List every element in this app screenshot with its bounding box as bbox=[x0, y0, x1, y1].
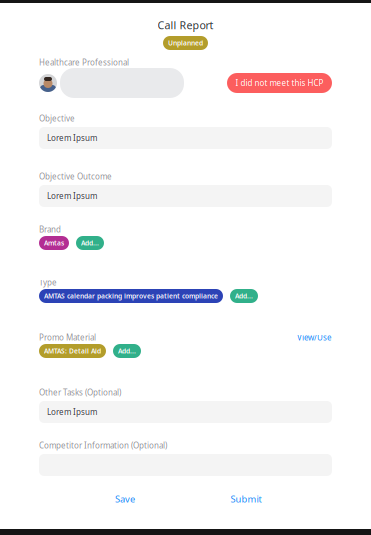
button[interactable]: AMTAS: Detail Aid bbox=[39, 344, 106, 358]
button[interactable]: View/Use bbox=[297, 332, 332, 343]
staticText: AMTAS: Detail Aid bbox=[44, 347, 101, 355]
staticText: AMTAS calendar packing improves patient … bbox=[44, 292, 218, 300]
staticText: Objective Outcome bbox=[39, 171, 112, 182]
staticText: Add... bbox=[235, 292, 253, 300]
button[interactable]: Add... bbox=[230, 289, 258, 303]
staticText: Healthcare Professional bbox=[39, 57, 129, 68]
staticText: Lorem Ipsum bbox=[47, 133, 97, 143]
staticText: View/Use bbox=[297, 332, 332, 343]
staticText: Submit bbox=[230, 493, 261, 505]
staticText: Add... bbox=[81, 239, 99, 247]
staticText: Lorem Ipsum bbox=[47, 407, 97, 417]
staticText: Other Tasks (Optional) bbox=[39, 387, 121, 398]
staticText: Add... bbox=[118, 347, 136, 355]
button[interactable]: AMTAS calendar packing improves patient … bbox=[39, 289, 223, 303]
button[interactable]: Add... bbox=[113, 344, 141, 358]
button[interactable]: Save bbox=[90, 491, 160, 507]
staticText: Amtas bbox=[44, 239, 64, 247]
staticText: Competitor Information (Optional) bbox=[39, 440, 167, 451]
staticText: Call Report bbox=[157, 18, 213, 32]
staticText: Save bbox=[115, 493, 135, 505]
staticText: Lorem Ipsum bbox=[47, 191, 97, 201]
staticText: Objective bbox=[39, 113, 75, 124]
staticText: Promo Material bbox=[39, 332, 96, 343]
button[interactable]: Submit bbox=[211, 491, 281, 507]
button[interactable]: I did not meet this HCP bbox=[227, 73, 332, 93]
button[interactable]: Amtas bbox=[39, 236, 69, 250]
staticText: I did not meet this HCP bbox=[235, 78, 323, 88]
staticText: Brand bbox=[39, 224, 61, 235]
staticText: Unplanned bbox=[168, 39, 203, 47]
button[interactable]: Add... bbox=[76, 236, 104, 250]
staticText: Type bbox=[39, 277, 57, 288]
